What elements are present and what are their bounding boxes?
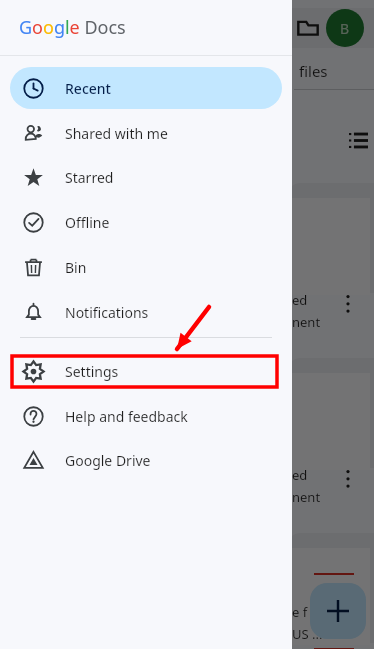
button[interactable]: Bin bbox=[0, 246, 292, 288]
staticText: Shared with me bbox=[65, 124, 168, 143]
staticText: Settings bbox=[65, 362, 119, 381]
other: List view bbox=[349, 131, 368, 150]
staticText: ed bbox=[292, 291, 308, 309]
other: More options bbox=[341, 605, 355, 627]
button[interactable]: Settings bbox=[0, 350, 292, 392]
staticText: nent bbox=[292, 313, 321, 331]
button[interactable]: Offline bbox=[0, 201, 292, 243]
other: Folder bbox=[297, 17, 319, 39]
staticText: ed bbox=[292, 466, 308, 484]
button[interactable]: Account bbox=[326, 9, 364, 47]
staticText: files bbox=[299, 61, 328, 81]
button[interactable]: Help and feedback bbox=[0, 395, 292, 437]
button[interactable] bbox=[288, 358, 374, 468]
button[interactable]: Starred bbox=[0, 156, 292, 198]
staticText: Google Drive bbox=[65, 451, 151, 470]
staticText: e f bbox=[292, 603, 308, 621]
staticText: Google Docs bbox=[19, 15, 126, 40]
staticText: US ... bbox=[292, 625, 323, 643]
button[interactable]: Notifications bbox=[0, 291, 292, 333]
staticText: nent bbox=[292, 488, 321, 506]
button[interactable]: Google Drive bbox=[0, 439, 292, 481]
button[interactable]: Recent bbox=[10, 67, 282, 109]
staticText: B bbox=[340, 19, 350, 38]
button[interactable] bbox=[288, 533, 374, 643]
staticText: Offline bbox=[65, 213, 110, 232]
staticText: Starred bbox=[65, 168, 114, 187]
other: More options bbox=[341, 293, 355, 315]
other: More options bbox=[341, 468, 355, 490]
button[interactable]: Shared with me bbox=[0, 112, 292, 154]
staticText: Recent bbox=[65, 79, 111, 98]
staticText: Bin bbox=[65, 258, 87, 277]
staticText: Help and feedback bbox=[65, 407, 188, 426]
button[interactable] bbox=[288, 183, 374, 293]
staticText: Notifications bbox=[65, 303, 149, 322]
button[interactable]: Create new document bbox=[310, 583, 366, 639]
